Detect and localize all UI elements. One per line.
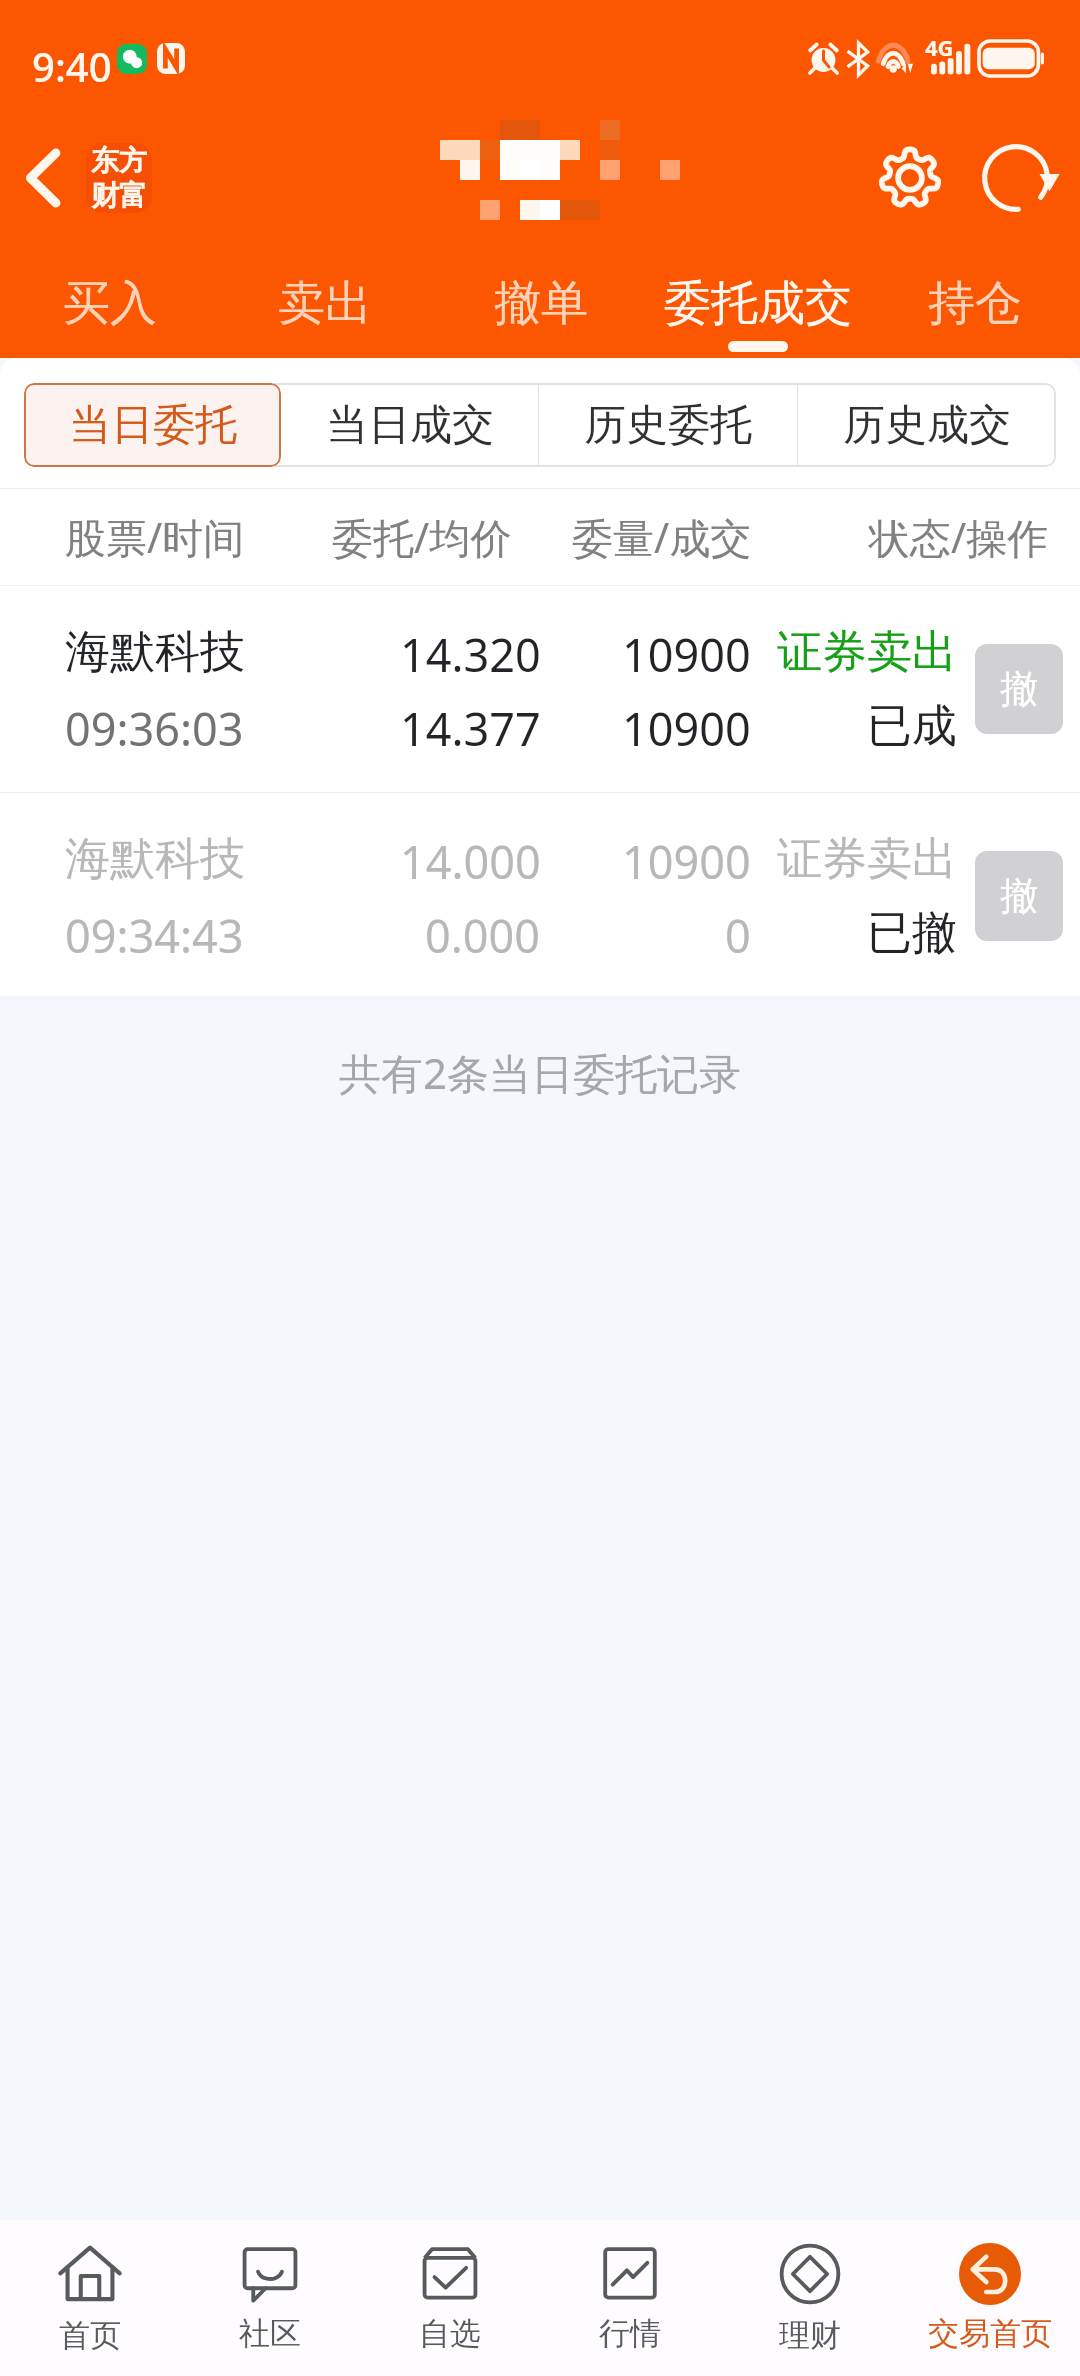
staticText: 委量/成交 (572, 509, 752, 565)
button[interactable]: 历史委托 (539, 383, 797, 467)
staticText: 10900 (622, 698, 751, 748)
staticText: 交易首页 (928, 2314, 1052, 2353)
button[interactable]: 委托成交 (650, 274, 865, 374)
staticText: 0 (725, 905, 751, 955)
button[interactable]: 首页 (0, 2220, 180, 2376)
staticText: 卖出 (278, 274, 372, 333)
staticText: 海默科技 (65, 831, 245, 888)
staticText: 证券卖出 (777, 831, 957, 881)
staticText: 9:40 (32, 39, 112, 93)
staticText: 历史成交 (843, 399, 1011, 452)
staticText: 已撤 (867, 905, 957, 955)
button[interactable]: 返回 (4, 133, 82, 223)
staticText: 10900 (622, 831, 751, 881)
staticText: 撤 (1000, 665, 1038, 713)
staticText: 09:36:03 (65, 698, 244, 759)
button[interactable]: 历史成交 (798, 383, 1056, 467)
staticText: 委托/均价 (332, 509, 512, 565)
staticText: 状态/操作 (869, 509, 1049, 565)
staticText: 当日成交 (326, 399, 494, 452)
staticText: 09:34:43 (65, 905, 244, 966)
staticText: 14.377 (400, 698, 541, 748)
button[interactable]: 当日委托 (24, 383, 281, 467)
staticText: 14.320 (400, 624, 541, 674)
staticText: 14.000 (400, 831, 541, 881)
button[interactable]: 刷新 (966, 128, 1066, 228)
staticText: 财富 (91, 178, 147, 213)
button[interactable]: 行情 (540, 2220, 720, 2376)
staticText: 首页 (59, 2316, 121, 2355)
staticText: 持仓 (928, 274, 1022, 333)
staticText: 买入 (63, 274, 157, 333)
staticText: 海默科技 (65, 624, 245, 681)
staticText: 历史委托 (584, 399, 752, 452)
staticText: 自选 (419, 2314, 481, 2353)
button[interactable]: 持仓 (907, 274, 1042, 374)
staticText: 理财 (779, 2316, 841, 2355)
button[interactable]: 自选 (360, 2220, 540, 2376)
button[interactable]: 理财 (720, 2220, 900, 2376)
button[interactable]: 社区 (180, 2220, 360, 2376)
staticText: 当日委托 (69, 399, 237, 452)
staticText: 东方 (91, 143, 147, 178)
staticText: 撤 (1000, 872, 1038, 920)
staticText: 0.000 (425, 905, 541, 955)
staticText: 股票/时间 (65, 509, 245, 565)
staticText: 4G (925, 32, 954, 62)
staticText: 委托成交 (664, 274, 852, 333)
button[interactable]: 撤 (975, 644, 1063, 734)
staticText: 撤单 (494, 274, 588, 333)
button[interactable]: 海默科技 (0, 586, 1080, 791)
staticText: 社区 (239, 2314, 301, 2353)
staticText: 行情 (599, 2314, 661, 2353)
button[interactable]: 设置 (860, 128, 960, 228)
button[interactable]: 卖出 (257, 274, 392, 374)
button[interactable]: 海默科技 (0, 793, 1080, 996)
button[interactable]: 撤 (975, 851, 1063, 941)
staticText: 10900 (622, 624, 751, 674)
button[interactable]: 交易首页 (900, 2220, 1080, 2376)
staticText: 共有2条当日委托记录 (339, 1044, 742, 1101)
button[interactable]: 东方 (86, 143, 152, 213)
staticText: 已成 (867, 698, 957, 748)
button[interactable]: 撤单 (473, 274, 608, 374)
button[interactable]: 当日成交 (281, 383, 538, 467)
staticText: 证券卖出 (777, 624, 957, 674)
button[interactable]: 买入 (42, 274, 177, 374)
